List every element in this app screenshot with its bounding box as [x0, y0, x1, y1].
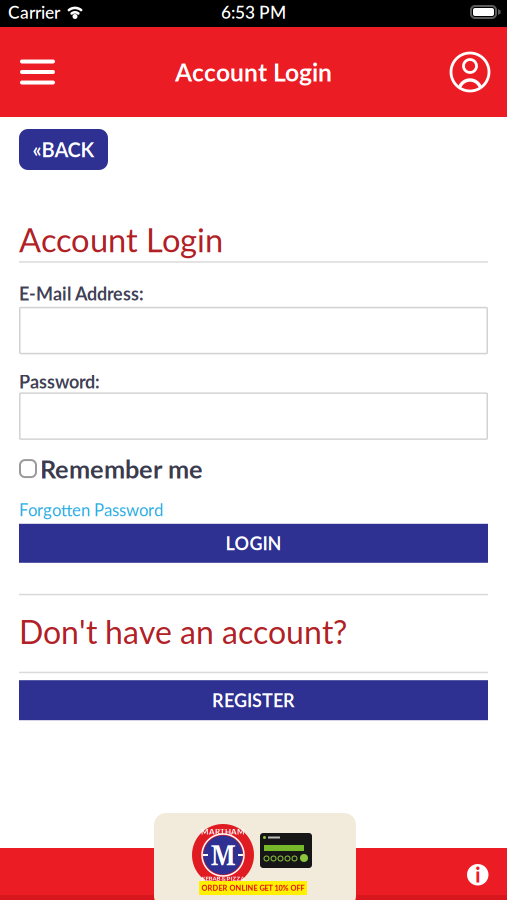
button[interactable]: REGISTER — [19, 680, 488, 720]
staticText: REGISTER — [212, 689, 295, 711]
staticText: M — [210, 837, 235, 873]
button[interactable]: LOGIN — [19, 524, 488, 563]
staticText: i — [475, 863, 480, 887]
button[interactable]: Remember me — [19, 453, 203, 484]
staticText: MARTHAM — [201, 827, 245, 836]
button[interactable]: Forgotten Password — [19, 500, 163, 520]
staticText: Forgotten Password — [19, 500, 163, 520]
staticText: Password: — [19, 371, 100, 392]
button[interactable]: «BACK — [19, 129, 108, 170]
staticText: Carrier — [8, 2, 60, 22]
staticText: LOGIN — [225, 532, 281, 554]
staticText: KEBAB & PIZZA — [201, 875, 244, 882]
staticText: 6:53 PM — [221, 2, 286, 22]
button[interactable]: Account — [449, 51, 507, 93]
staticText: Account Login — [175, 57, 332, 87]
staticText: E-Mail Address: — [19, 283, 144, 304]
staticText: «BACK — [32, 137, 94, 161]
staticText: Account Login — [19, 220, 223, 259]
button[interactable]: Menu — [0, 43, 55, 100]
button[interactable]: Info — [467, 864, 488, 885]
staticText: Remember me — [40, 453, 203, 484]
staticText: ORDER ONLINE GET 10% OFF — [201, 884, 304, 892]
staticText: Don't have an account? — [19, 612, 347, 651]
